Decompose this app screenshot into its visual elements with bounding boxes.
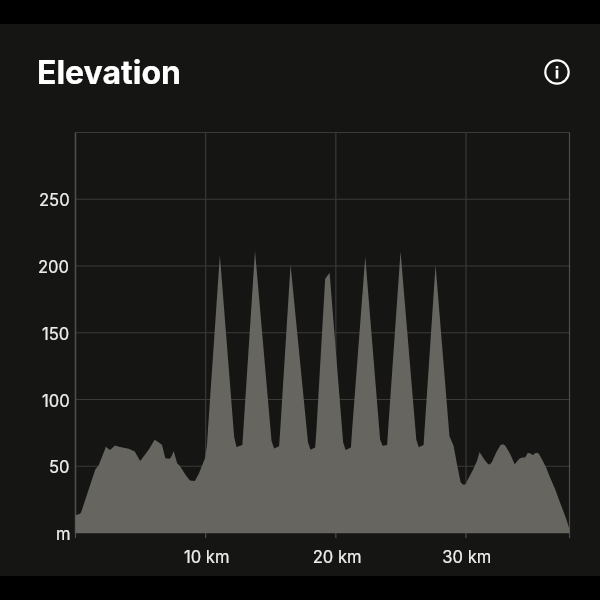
staticText: Elevation	[37, 53, 181, 92]
button[interactable]: Info	[533, 48, 581, 96]
